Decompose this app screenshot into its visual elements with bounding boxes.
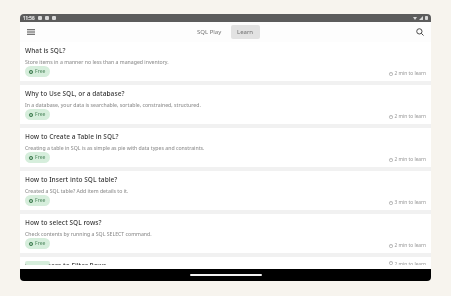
staticText: Creating a table in SQL is as simple as … <box>25 144 205 151</box>
button[interactable]: Open navigation menu <box>24 25 38 39</box>
staticText: 11:56 <box>23 15 35 21</box>
staticText: SQL Play <box>197 28 222 36</box>
staticText: Check contents by running a SQL SELECT c… <box>25 230 152 237</box>
staticText: Free <box>35 111 46 118</box>
button[interactable]: SQL, Where to Filter Rows <box>20 257 431 269</box>
button[interactable]: How to Create a Table in SQL? <box>20 128 431 167</box>
button[interactable]: Free <box>25 261 50 265</box>
staticText: Why to Use SQL, or a database? <box>25 89 125 98</box>
staticText: What is SQL? <box>25 46 66 55</box>
staticText: Created a SQL table? Add item details to… <box>25 187 129 194</box>
staticText: Store items in a manner no less than a m… <box>25 58 169 65</box>
staticText: In a database, your data is searchable, … <box>25 101 201 108</box>
staticText: Free <box>35 154 46 161</box>
button[interactable]: Free <box>25 195 50 206</box>
staticText: 2 min to learn <box>394 70 426 77</box>
staticText: How to select SQL rows? <box>25 218 102 227</box>
staticText: 3 min to learn <box>394 199 426 206</box>
button[interactable]: Home gesture bar <box>190 274 262 276</box>
staticText: 2 min to learn <box>394 113 426 120</box>
staticText: Free <box>35 68 46 75</box>
button[interactable]: Why to Use SQL, or a database? <box>20 85 431 124</box>
staticText: How to Create a Table in SQL? <box>25 132 119 141</box>
staticText: 2 min to learn <box>394 156 426 163</box>
button[interactable]: How to Insert into SQL table? <box>20 171 431 210</box>
staticText: Free <box>35 197 46 204</box>
staticText: Learn <box>237 28 254 36</box>
button[interactable]: Learn <box>231 25 260 39</box>
button[interactable]: Search <box>413 25 427 39</box>
button[interactable]: Free <box>25 66 50 77</box>
button[interactable]: What is SQL? <box>20 42 431 81</box>
staticText: How to Insert into SQL table? <box>25 175 118 184</box>
button[interactable]: Free <box>25 152 50 163</box>
button[interactable]: How to select SQL rows? <box>20 214 431 253</box>
staticText: Free <box>35 240 46 247</box>
button[interactable]: Free <box>25 109 50 120</box>
button[interactable]: Free <box>25 238 50 249</box>
staticText: SQL, Where to Filter Rows <box>25 261 107 265</box>
staticText: 2 min to learn <box>394 242 426 249</box>
button[interactable]: SQL Play <box>191 25 228 39</box>
staticText: 2 min to learn <box>394 261 426 265</box>
